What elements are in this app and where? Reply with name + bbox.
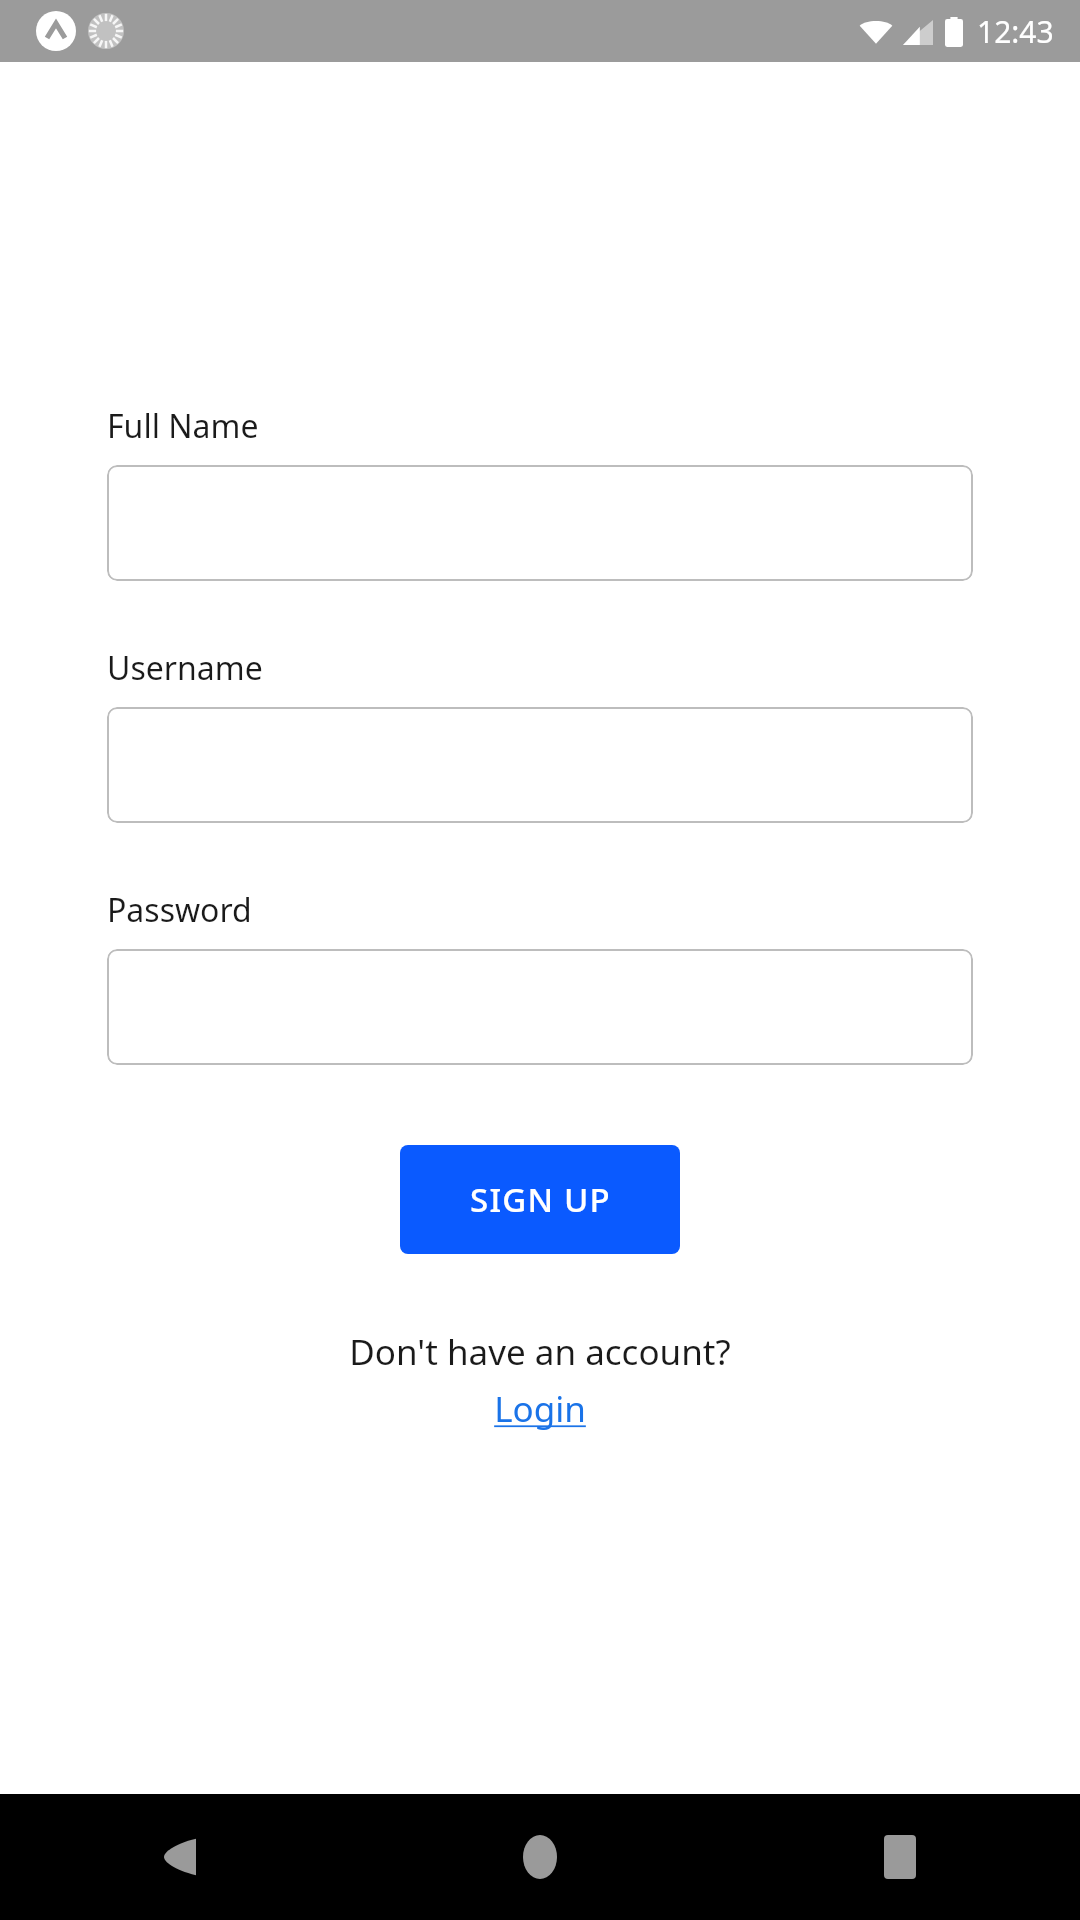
button[interactable]	[107, 465, 973, 581]
button[interactable]: SIGN UP	[400, 1145, 680, 1254]
button[interactable]	[107, 949, 973, 1065]
staticText: Don't have an account?	[349, 1328, 731, 1376]
staticText: Full Name	[107, 404, 259, 448]
button[interactable]: Login	[494, 1385, 586, 1433]
button[interactable]: Back	[0, 1794, 360, 1920]
staticText: Password	[107, 888, 252, 932]
button[interactable]: Recent apps	[720, 1794, 1080, 1920]
staticText: Username	[107, 646, 263, 690]
staticText: 12:43	[977, 11, 1054, 52]
button[interactable]	[107, 707, 973, 823]
staticText: Login	[494, 1385, 586, 1433]
staticText: SIGN UP	[470, 1177, 611, 1222]
button[interactable]: Home	[360, 1794, 720, 1920]
